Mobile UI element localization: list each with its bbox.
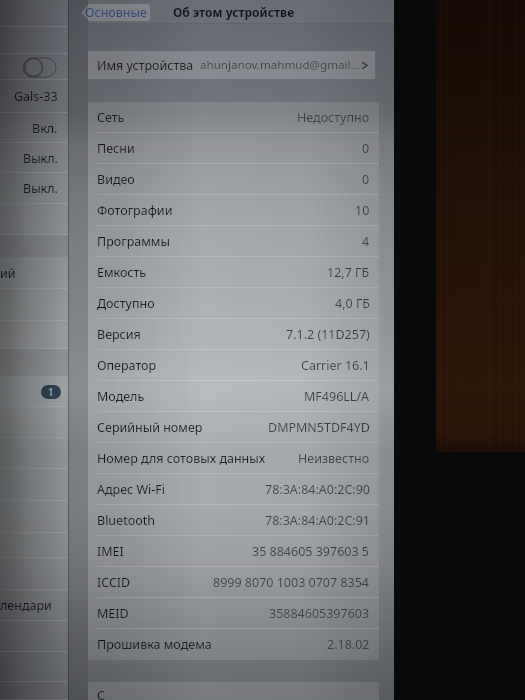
button[interactable]: лендари	[0, 590, 68, 621]
staticText: 7.1.2 (11D257)	[286, 326, 370, 343]
staticText: 12,7 ГБ	[327, 264, 370, 281]
staticText: 35 884605 397603 5	[252, 543, 370, 560]
button[interactable]	[0, 558, 68, 590]
button[interactable]	[0, 533, 68, 558]
staticText: С	[97, 687, 106, 700]
staticText: Песни	[97, 140, 135, 157]
button[interactable]: Прошивка модема	[88, 629, 379, 660]
button[interactable]	[0, 438, 68, 469]
button[interactable]: Емкость	[88, 257, 379, 288]
staticText: DMPMN5TDF4YD	[268, 419, 370, 436]
button[interactable]	[0, 652, 68, 682]
button[interactable]: Выкл.	[0, 173, 68, 204]
staticText: Основные	[85, 4, 147, 21]
staticText: Модель	[97, 388, 145, 405]
button[interactable]: Программы	[88, 226, 379, 257]
staticText: Адрес Wi-Fi	[97, 481, 166, 498]
staticText: Оператор	[97, 357, 157, 374]
button[interactable]: Вкл.	[0, 113, 68, 143]
button[interactable]: IMEI	[88, 536, 379, 567]
staticText: ий	[0, 265, 16, 282]
button[interactable]	[0, 682, 68, 700]
staticText: IMEI	[97, 543, 124, 560]
staticText: 35884605397603	[269, 605, 370, 622]
button[interactable]: ICCID	[88, 567, 379, 598]
staticText: ahunjanov.mahmud@gmail…	[200, 57, 360, 73]
staticText: Имя устройства	[97, 57, 194, 74]
staticText: Серийный номер	[97, 419, 203, 436]
button[interactable]: Модель	[88, 381, 379, 412]
staticText: Выкл.	[23, 150, 58, 167]
staticText: 8999 8070 1003 0707 8354	[213, 574, 370, 591]
button[interactable]: Доступно	[88, 288, 379, 319]
button[interactable]	[0, 321, 68, 349]
button[interactable]: 1	[0, 376, 68, 407]
button[interactable]	[0, 469, 68, 501]
staticText: Номер для сотовых данных	[97, 450, 266, 467]
staticText: 78:3A:84:A0:2C:91	[265, 512, 370, 529]
button[interactable]: Основные	[81, 3, 150, 22]
button[interactable]: Gals-33	[0, 80, 68, 113]
staticText: Сеть	[97, 109, 125, 126]
staticText: Gals-33	[14, 88, 58, 105]
button[interactable]	[0, 289, 68, 321]
staticText: Видео	[97, 171, 135, 188]
staticText: 0	[362, 140, 370, 157]
button[interactable]	[0, 501, 68, 533]
button[interactable]: Версия	[88, 319, 379, 350]
staticText: Об этом устройстве	[173, 4, 295, 20]
staticText: лендари	[0, 597, 52, 614]
staticText: Неизвестно	[298, 450, 370, 467]
button[interactable]: Оператор	[88, 350, 379, 381]
staticText: 2.18.02	[327, 636, 370, 653]
staticText: Фотографии	[97, 202, 173, 219]
staticText: Bluetooth	[97, 512, 156, 529]
button[interactable]	[0, 27, 68, 54]
staticText: MEID	[97, 605, 129, 622]
button[interactable]: Видео	[88, 164, 379, 195]
staticText: Доступно	[97, 295, 155, 312]
staticText: 1	[48, 385, 54, 399]
staticText: Емкость	[97, 264, 147, 281]
button[interactable]: Выкл.	[0, 143, 68, 173]
button[interactable]: Серийный номер	[88, 412, 379, 443]
button[interactable]: Фотографии	[88, 195, 379, 226]
staticText: Выкл.	[23, 180, 58, 197]
staticText: ICCID	[97, 574, 131, 591]
staticText: 4,0 ГБ	[335, 295, 370, 312]
button[interactable]: ий	[0, 257, 68, 289]
staticText: Версия	[97, 326, 141, 343]
staticText: 0	[362, 171, 370, 188]
staticText: Вкл.	[32, 120, 58, 137]
staticText: 78:3A:84:A0:2C:90	[265, 481, 370, 498]
button[interactable]	[0, 204, 68, 235]
button[interactable]: Номер для сотовых данных	[88, 443, 379, 474]
button[interactable]	[0, 621, 68, 652]
button[interactable]: Адрес Wi-Fi	[88, 474, 379, 505]
button[interactable]: Имя устройства	[88, 51, 375, 79]
staticText: Недоступно	[297, 109, 370, 126]
button[interactable]: Bluetooth	[88, 505, 379, 536]
button[interactable]: Переключатель	[0, 54, 68, 80]
button[interactable]: Песни	[88, 133, 379, 164]
button[interactable]: MEID	[88, 598, 379, 629]
staticText: 4	[362, 233, 370, 250]
staticText: Программы	[97, 233, 170, 250]
staticText: 10	[355, 202, 370, 219]
button[interactable]	[0, 407, 68, 438]
staticText: Прошивка модема	[97, 636, 212, 653]
button[interactable]: Сеть	[88, 102, 379, 133]
button[interactable]: С	[88, 682, 379, 700]
staticText: MF496LL/A	[304, 388, 370, 405]
staticText: Carrier 16.1	[301, 357, 370, 374]
